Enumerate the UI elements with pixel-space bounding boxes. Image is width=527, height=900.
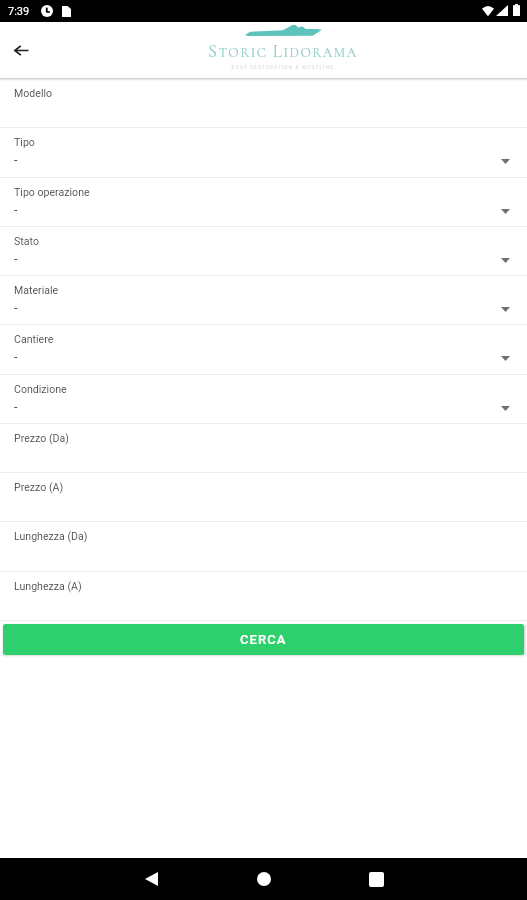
button[interactable]: Stato <box>0 227 527 276</box>
button[interactable]: Recent apps <box>356 859 396 899</box>
staticText: STORIC LIDORAMA <box>183 41 383 62</box>
staticText: - <box>14 202 18 217</box>
button[interactable]: Modello <box>0 79 527 128</box>
button[interactable]: Home <box>244 859 284 899</box>
staticText: Prezzo (Da) <box>14 432 69 444</box>
button[interactable]: Prezzo (A) <box>0 473 527 522</box>
staticText: CERCA <box>240 632 287 647</box>
button[interactable]: Tipo operazione <box>0 178 527 227</box>
button[interactable]: Condizione <box>0 375 527 424</box>
staticText: Materiale <box>14 284 59 296</box>
staticText: - <box>14 399 18 414</box>
staticText: - <box>14 349 18 364</box>
staticText: Modello <box>14 87 53 99</box>
staticText: Prezzo (A) <box>14 481 64 493</box>
button[interactable]: Lunghezza (Da) <box>0 522 527 572</box>
staticText: Condizione <box>14 383 67 395</box>
staticText: Tipo operazione <box>14 186 90 198</box>
button[interactable]: Prezzo (Da) <box>0 424 527 473</box>
staticText: - <box>14 300 18 315</box>
button[interactable]: Back <box>5 34 37 66</box>
staticText: - <box>14 251 18 266</box>
button[interactable]: Materiale <box>0 276 527 325</box>
staticText: - <box>14 152 18 167</box>
button[interactable]: CERCA <box>3 624 524 655</box>
button[interactable]: Lunghezza (A) <box>0 572 527 621</box>
staticText: Lunghezza (Da) <box>14 530 88 542</box>
button[interactable]: Cantiere <box>0 325 527 375</box>
staticText: BOAT RESTORATION & MODELING <box>183 65 383 70</box>
staticText: Tipo <box>14 136 35 148</box>
button[interactable]: Tipo <box>0 128 527 178</box>
staticText: 7:39 <box>8 5 30 18</box>
button[interactable]: Back <box>131 859 171 899</box>
staticText: Lunghezza (A) <box>14 580 82 592</box>
staticText: Stato <box>14 235 39 247</box>
staticText: Cantiere <box>14 333 54 345</box>
